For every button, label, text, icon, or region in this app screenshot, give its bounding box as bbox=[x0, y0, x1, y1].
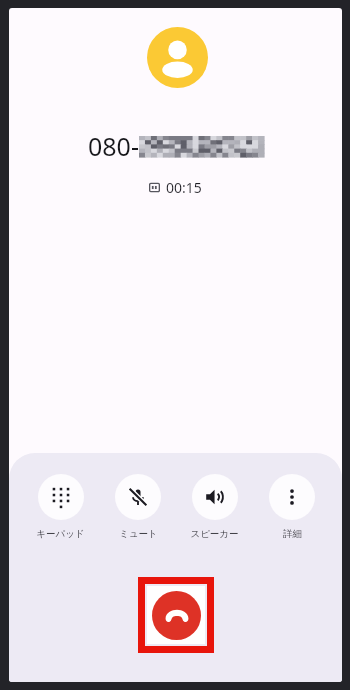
other: Contact avatar bbox=[147, 27, 208, 88]
staticText: 00:15 bbox=[166, 178, 202, 197]
button[interactable]: キーパッド bbox=[34, 474, 87, 540]
button[interactable]: ミュート bbox=[113, 474, 163, 540]
staticText: キーパッド bbox=[36, 528, 85, 540]
staticText: ミュート bbox=[119, 528, 158, 540]
button[interactable]: 詳細 bbox=[267, 474, 317, 540]
staticText: 080- bbox=[88, 129, 139, 163]
button[interactable]: End call bbox=[152, 591, 201, 640]
staticText: 詳細 bbox=[283, 528, 302, 540]
staticText: スピーカー bbox=[190, 528, 239, 540]
button[interactable]: スピーカー bbox=[188, 474, 241, 540]
